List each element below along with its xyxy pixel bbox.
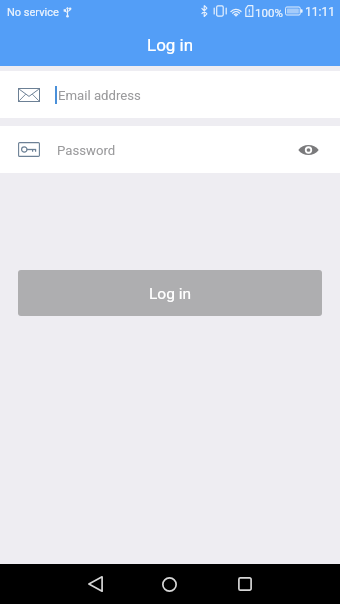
staticText: Password: [57, 143, 116, 158]
button[interactable]: Home: [147, 564, 191, 604]
button[interactable]: Recents: [223, 564, 267, 604]
staticText: Log in: [149, 285, 192, 303]
staticText: 11:11: [305, 5, 335, 19]
button[interactable]: Password: [0, 126, 340, 173]
button[interactable]: Back: [73, 564, 117, 604]
staticText: Email address: [58, 88, 141, 103]
staticText: 100%: [255, 6, 283, 19]
button[interactable]: Log in: [18, 270, 322, 316]
button[interactable]: Email address: [0, 71, 340, 118]
staticText: Log in: [147, 35, 194, 55]
staticText: No service: [7, 6, 59, 19]
button[interactable]: Show password: [286, 126, 330, 173]
